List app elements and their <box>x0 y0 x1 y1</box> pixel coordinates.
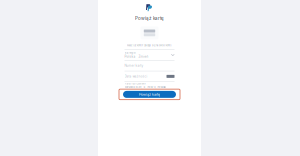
button[interactable]: Powiąż kartę <box>123 91 176 98</box>
button[interactable]: Kraj/Region <box>124 50 174 60</box>
staticText: Polska Zmień <box>124 55 148 58</box>
staticText: Powiąż kartę <box>135 16 164 21</box>
staticText: Powiąż kartę <box>139 92 160 97</box>
staticText: Warszawa 00-001, ul. Polna 12, Polska <box>124 86 163 88</box>
button[interactable]: Numer karty <box>124 61 174 71</box>
button[interactable]: Data ważności <box>124 71 174 81</box>
staticText: Masz już konto? Zaloguj się na swoje kon… <box>127 44 172 47</box>
staticText: Kraj/Region <box>124 52 135 54</box>
staticText: Numer karty <box>124 64 143 68</box>
staticText: Adres rozliczeniowy <box>124 82 145 85</box>
staticText: Data ważności <box>124 74 147 78</box>
